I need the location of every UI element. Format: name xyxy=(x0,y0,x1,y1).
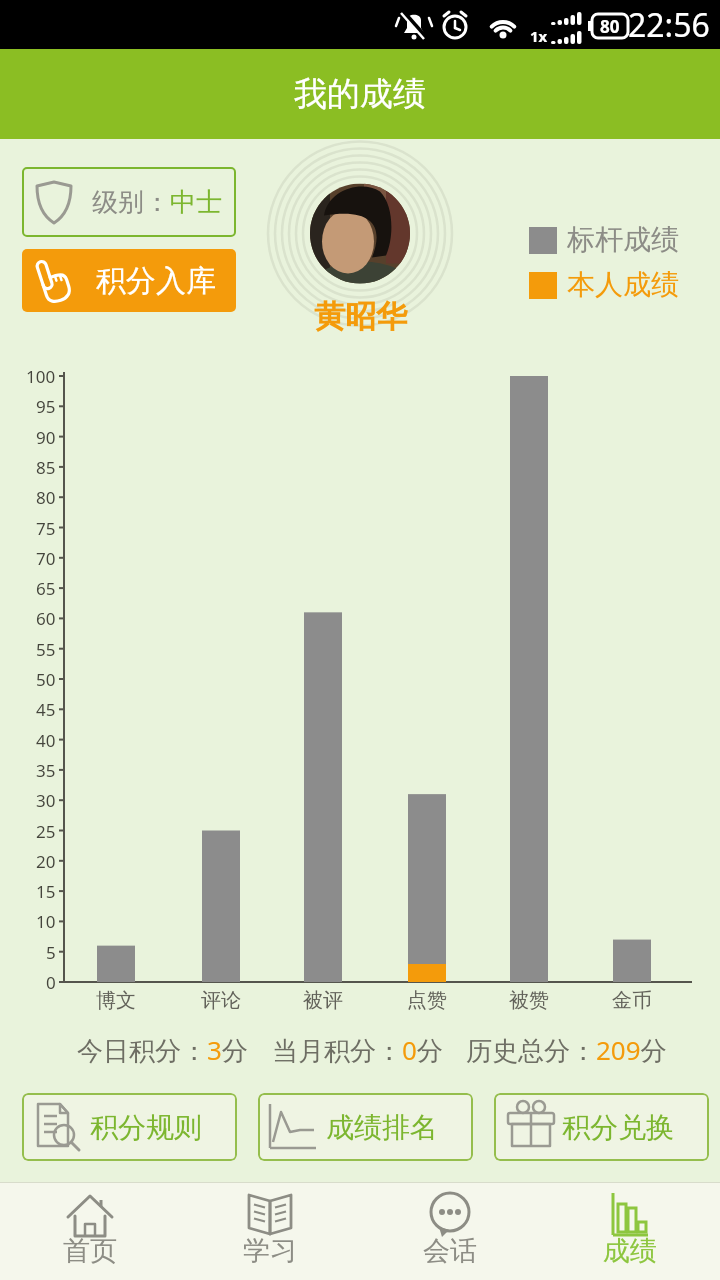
staticText: 被评 xyxy=(303,988,343,1013)
staticText: 1x xyxy=(530,26,548,46)
staticText: 积分入库 xyxy=(96,262,216,300)
button[interactable]: 级别：中士 xyxy=(22,167,236,237)
staticText: 成绩排名 xyxy=(326,1110,438,1145)
staticText: 成绩 xyxy=(603,1234,657,1268)
staticText: 22:56 xyxy=(628,3,710,47)
staticText: 40 xyxy=(36,729,56,751)
staticText: 75 xyxy=(36,517,56,539)
button[interactable]: 会话 xyxy=(360,1182,540,1280)
staticText: 会话 xyxy=(423,1234,477,1268)
staticText: 黄昭华 xyxy=(314,297,407,336)
staticText: 级别：中士 xyxy=(92,186,222,219)
staticText: 35 xyxy=(36,759,56,781)
button[interactable]: 积分入库 xyxy=(22,249,236,312)
staticText: 70 xyxy=(36,547,56,569)
button[interactable]: 积分兑换 xyxy=(494,1093,709,1161)
staticText: 0 xyxy=(46,971,56,993)
staticText: 60 xyxy=(36,607,56,629)
staticText: 历史总分：209分 xyxy=(466,1032,667,1068)
staticText: 评论 xyxy=(201,988,241,1013)
staticText: 标杆成绩 xyxy=(567,222,679,257)
button[interactable]: 首页 xyxy=(0,1182,180,1280)
staticText: 50 xyxy=(36,668,56,690)
staticText: 85 xyxy=(36,456,56,478)
staticText: 20 xyxy=(36,850,56,872)
staticText: 当月积分：0分 xyxy=(272,1032,443,1068)
staticText: 80 xyxy=(36,486,56,508)
staticText: 95 xyxy=(36,395,56,417)
button[interactable]: 成绩排名 xyxy=(258,1093,473,1161)
staticText: 积分兑换 xyxy=(562,1110,674,1145)
staticText: 100 xyxy=(26,365,56,387)
staticText: 90 xyxy=(36,426,56,448)
staticText: 45 xyxy=(36,698,56,720)
staticText: 25 xyxy=(36,820,56,842)
staticText: 金币 xyxy=(612,988,652,1013)
staticText: 5 xyxy=(46,941,56,963)
button[interactable]: 积分规则 xyxy=(22,1093,237,1161)
staticText: 首页 xyxy=(63,1234,117,1268)
staticText: 博文 xyxy=(96,988,136,1013)
staticText: 学习 xyxy=(243,1234,297,1268)
staticText: 30 xyxy=(36,789,56,811)
staticText: 我的成绩 xyxy=(294,73,426,115)
button[interactable]: 学习 xyxy=(180,1182,360,1280)
staticText: 65 xyxy=(36,577,56,599)
staticText: 15 xyxy=(36,880,56,902)
staticText: 今日积分：3分 xyxy=(77,1032,248,1068)
staticText: 10 xyxy=(36,910,56,932)
staticText: 本人成绩 xyxy=(567,267,679,302)
staticText: 80 xyxy=(600,15,620,38)
button[interactable]: 成绩 xyxy=(540,1182,720,1280)
staticText: 点赞 xyxy=(407,988,447,1013)
staticText: 积分规则 xyxy=(90,1110,202,1145)
staticText: 被赞 xyxy=(509,988,549,1013)
staticText: 55 xyxy=(36,638,56,660)
